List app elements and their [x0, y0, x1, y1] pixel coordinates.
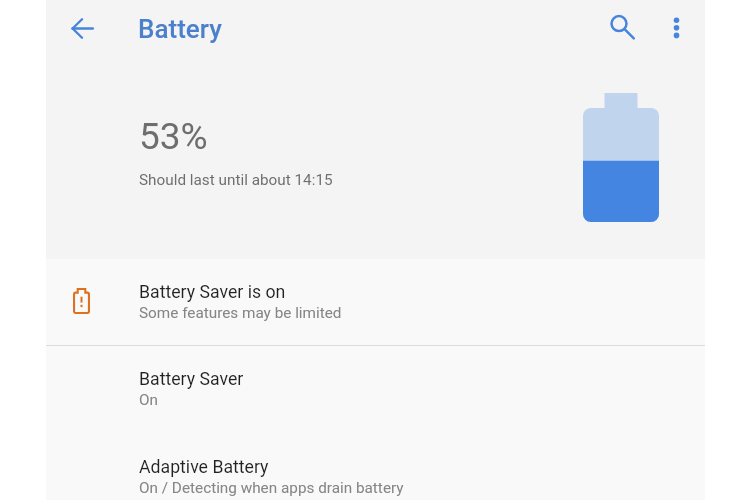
- other: Battery level 53 percent: [583, 93, 659, 222]
- staticText: Some features may be limited: [139, 304, 342, 322]
- staticText: On: [139, 391, 158, 409]
- button[interactable]: More options: [664, 12, 689, 37]
- staticText: 53%: [139, 115, 208, 158]
- button[interactable]: Adaptive Battery: [46, 434, 705, 500]
- staticText: Should last until about 14:15: [139, 171, 333, 189]
- button[interactable]: Navigate up: [71, 18, 95, 42]
- staticText: Battery Saver: [139, 369, 244, 390]
- button[interactable]: Battery Saver is on: [46, 259, 705, 345]
- staticText: Battery Saver is on: [139, 282, 286, 303]
- staticText: Adaptive Battery: [139, 457, 269, 478]
- button[interactable]: Search: [610, 12, 636, 38]
- button[interactable]: Battery: [138, 14, 222, 44]
- button[interactable]: Battery Saver: [46, 346, 705, 434]
- staticText: On / Detecting when apps drain battery: [139, 479, 404, 497]
